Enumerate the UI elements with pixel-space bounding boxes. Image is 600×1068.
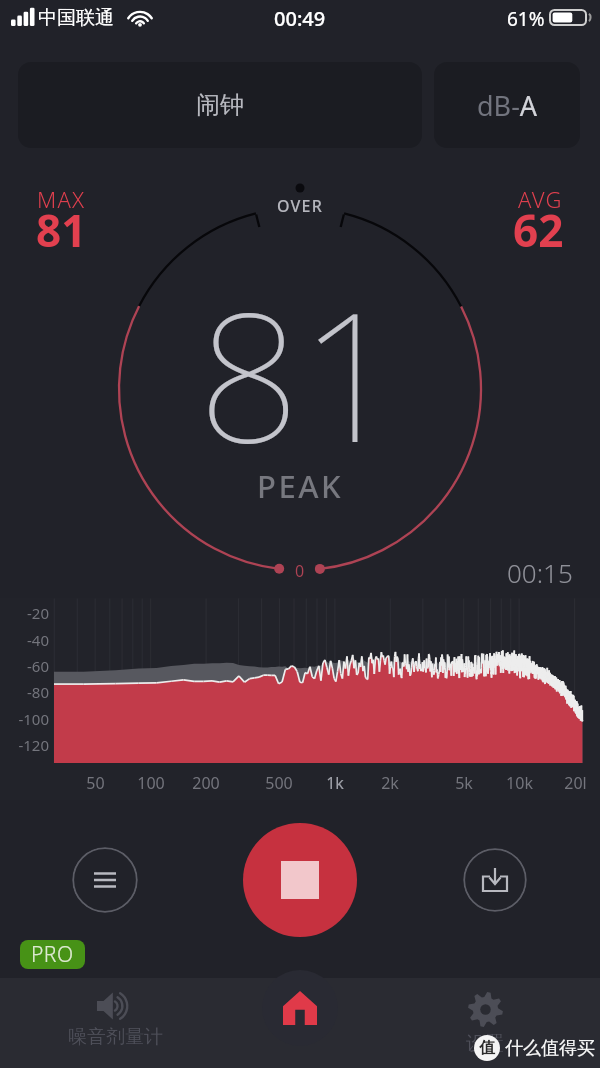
staticText: 值 [479, 1038, 495, 1058]
staticText: 20l [564, 772, 587, 794]
staticText: PRO [31, 940, 74, 969]
staticText: 81 [198, 251, 403, 495]
button[interactable]: PRO [20, 940, 85, 969]
staticText: -100 [18, 709, 49, 729]
button[interactable]: Stop recording [243, 823, 357, 937]
staticText: AVG [518, 184, 563, 214]
staticText: OVER [277, 195, 324, 217]
button[interactable]: Home [262, 970, 338, 1046]
button[interactable]: 噪音剂量计 [50, 992, 180, 1049]
staticText: 500 [265, 772, 293, 794]
staticText: 81 [36, 200, 87, 260]
staticText: -80 [27, 682, 49, 702]
staticText: 50 [86, 772, 105, 794]
staticText: 设置 [466, 1032, 504, 1056]
button[interactable]: 设置 [420, 992, 550, 1056]
button[interactable]: 闹钟 [18, 62, 422, 148]
staticText: 200 [192, 772, 220, 794]
staticText: 10k [506, 772, 533, 794]
staticText: 1k [326, 772, 344, 794]
staticText: 2k [381, 772, 399, 794]
staticText: 闹钟 [196, 90, 244, 120]
staticText: 中国联通 [38, 6, 114, 30]
staticText: PEAK [257, 465, 344, 507]
staticText: -60 [27, 656, 49, 676]
staticText: 噪音剂量计 [68, 1025, 163, 1049]
staticText: 62 [513, 200, 564, 260]
staticText: 0 [295, 560, 305, 582]
staticText: -120 [18, 735, 49, 755]
staticText: 61% [507, 6, 545, 32]
button[interactable]: Save recording [463, 848, 527, 912]
staticText: -20 [27, 603, 49, 623]
button[interactable]: Menu [72, 847, 138, 913]
staticText: 5k [455, 772, 473, 794]
staticText: 00:15 [507, 555, 573, 590]
staticText: 00:49 [274, 5, 326, 32]
staticText: 100 [137, 772, 165, 794]
button[interactable]: dB-A [434, 62, 580, 148]
staticText: -40 [27, 630, 49, 650]
staticText: 什么值得买 [505, 1037, 595, 1060]
staticText: MAX [37, 184, 86, 214]
staticText: dB-A [477, 87, 538, 124]
